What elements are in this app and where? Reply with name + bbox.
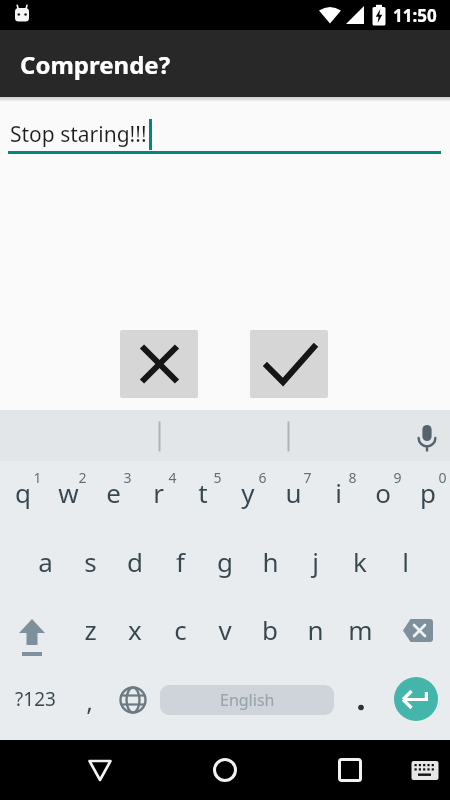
button[interactable] xyxy=(328,748,372,792)
button[interactable]: h xyxy=(248,533,292,589)
staticText: m xyxy=(348,612,373,647)
staticText: i xyxy=(335,475,342,510)
staticText: 11:50 xyxy=(393,4,437,27)
staticText: English xyxy=(220,689,275,711)
staticText: e xyxy=(106,475,121,510)
staticText: 7 xyxy=(303,468,312,487)
staticText: k xyxy=(353,544,367,579)
button[interactable]: v xyxy=(203,601,247,657)
staticText: b xyxy=(262,612,278,647)
button[interactable]: l xyxy=(383,533,427,589)
button[interactable]: z xyxy=(68,601,112,657)
button[interactable]: b xyxy=(248,601,292,657)
staticText: r xyxy=(153,475,164,510)
button[interactable]: q xyxy=(1,466,45,518)
button[interactable]: u xyxy=(271,466,315,518)
staticText: h xyxy=(262,544,279,579)
staticText: 6 xyxy=(258,468,267,487)
staticText: 0 xyxy=(438,468,447,487)
button[interactable]: English xyxy=(160,685,334,715)
staticText: u xyxy=(285,475,302,510)
staticText: , xyxy=(86,684,93,718)
staticText: j xyxy=(312,544,319,579)
button[interactable]: r xyxy=(136,466,180,518)
button[interactable] xyxy=(390,605,446,661)
button[interactable] xyxy=(78,748,122,792)
staticText: a xyxy=(38,544,53,579)
button[interactable]: x xyxy=(113,601,157,657)
button[interactable]: e xyxy=(91,466,135,518)
staticText: 8 xyxy=(348,468,357,487)
button[interactable]: i xyxy=(316,466,360,518)
staticText: 3 xyxy=(123,468,132,487)
button[interactable] xyxy=(4,605,60,661)
staticText: q xyxy=(15,475,31,510)
button[interactable] xyxy=(250,330,328,398)
staticText: x xyxy=(128,612,142,647)
staticText: p xyxy=(420,475,436,510)
button[interactable]: f xyxy=(158,533,202,589)
staticText: Comprende? xyxy=(20,48,171,81)
button[interactable]: c xyxy=(158,601,202,657)
staticText: s xyxy=(84,544,97,579)
staticText: n xyxy=(307,612,324,647)
button[interactable]: w xyxy=(46,466,90,518)
button[interactable]: p xyxy=(406,466,450,518)
staticText: y xyxy=(241,475,255,510)
button[interactable] xyxy=(107,674,159,726)
button[interactable]: y xyxy=(226,466,270,518)
staticText: d xyxy=(127,544,143,579)
button[interactable] xyxy=(403,748,447,792)
staticText: 9 xyxy=(393,468,402,487)
button[interactable] xyxy=(394,677,438,721)
staticText: c xyxy=(174,612,187,647)
button[interactable]: , xyxy=(69,676,109,726)
button[interactable] xyxy=(203,748,247,792)
button[interactable]: k xyxy=(338,533,382,589)
button[interactable]: o xyxy=(361,466,405,518)
staticText: g xyxy=(217,544,233,579)
button[interactable]: d xyxy=(113,533,157,589)
staticText: o xyxy=(375,475,391,510)
staticText: Stop staring!!! xyxy=(10,120,147,149)
button[interactable]: s xyxy=(68,533,112,589)
button[interactable]: m xyxy=(338,601,382,657)
staticText: t xyxy=(198,475,208,510)
button[interactable]: j xyxy=(293,533,337,589)
button[interactable]: t xyxy=(181,466,225,518)
staticText: f xyxy=(176,544,185,579)
button[interactable] xyxy=(350,691,372,713)
staticText: 4 xyxy=(168,468,177,487)
staticText: ?123 xyxy=(15,686,56,712)
staticText: w xyxy=(58,475,79,510)
staticText: 2 xyxy=(78,468,87,487)
button[interactable] xyxy=(120,330,198,398)
button[interactable]: g xyxy=(203,533,247,589)
staticText: z xyxy=(84,612,97,647)
button[interactable]: ?123 xyxy=(4,669,66,729)
staticText: v xyxy=(218,612,232,647)
staticText: 5 xyxy=(213,468,222,487)
staticText: l xyxy=(402,544,409,579)
button[interactable]: n xyxy=(293,601,337,657)
button[interactable]: a xyxy=(23,533,67,589)
staticText: 1 xyxy=(33,468,42,487)
